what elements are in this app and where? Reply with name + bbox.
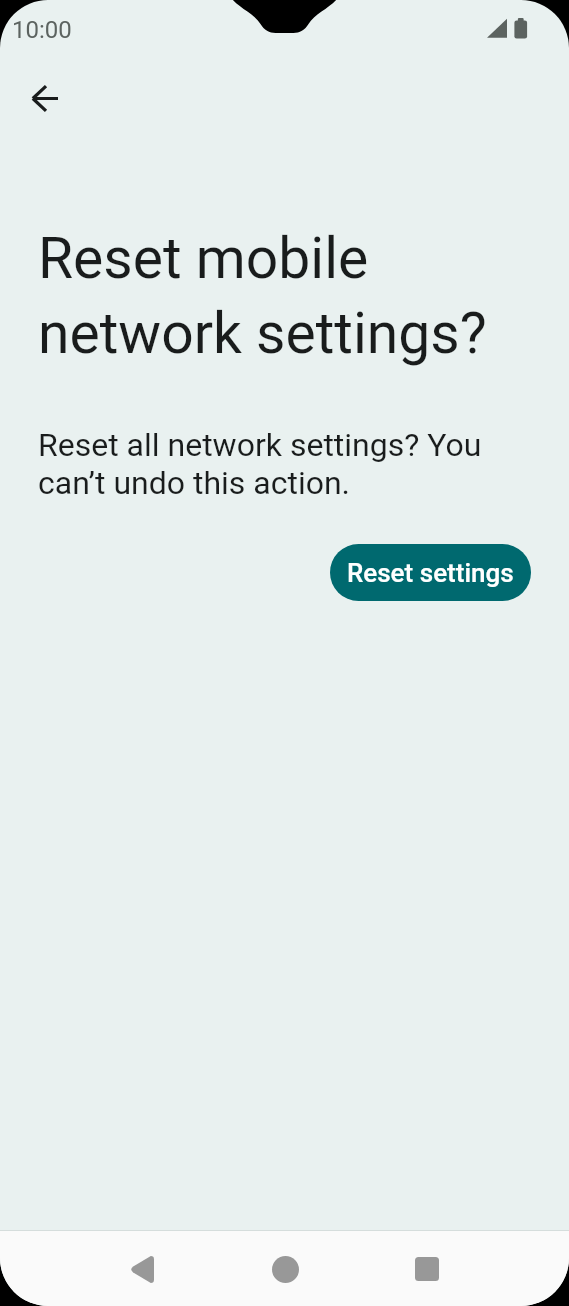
button[interactable]: Reset settings xyxy=(330,544,531,601)
staticText: Reset settings xyxy=(347,558,514,588)
staticText: Reset all network settings? You can’t un… xyxy=(38,426,507,502)
button[interactable]: Home xyxy=(261,1245,309,1293)
button[interactable]: Back xyxy=(118,1245,166,1293)
button[interactable]: Navigate up xyxy=(21,74,69,122)
staticText: Reset mobile network settings? xyxy=(38,219,511,369)
button[interactable]: Recent apps xyxy=(403,1245,451,1293)
staticText: 10:00 xyxy=(12,18,72,43)
